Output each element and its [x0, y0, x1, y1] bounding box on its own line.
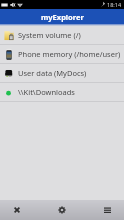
button[interactable]: Settings: [34, 200, 90, 220]
button[interactable]: Close: [0, 200, 34, 220]
button[interactable]: User data (MyDocs): [0, 64, 124, 83]
staticText: 18:14: [107, 1, 122, 8]
staticText: Phone memory (/home/user): [18, 49, 121, 59]
button[interactable]: \\Kit\Downloads: [0, 83, 124, 102]
button[interactable]: System volume (/): [0, 26, 124, 45]
staticText: myExplorer: [41, 12, 84, 22]
button[interactable]: Phone memory (/home/user): [0, 45, 124, 64]
staticText: User data (MyDocs): [18, 68, 87, 78]
button[interactable]: Menu: [90, 200, 124, 220]
staticText: System volume (/): [18, 30, 81, 40]
staticText: \\Kit\Downloads: [18, 87, 75, 97]
